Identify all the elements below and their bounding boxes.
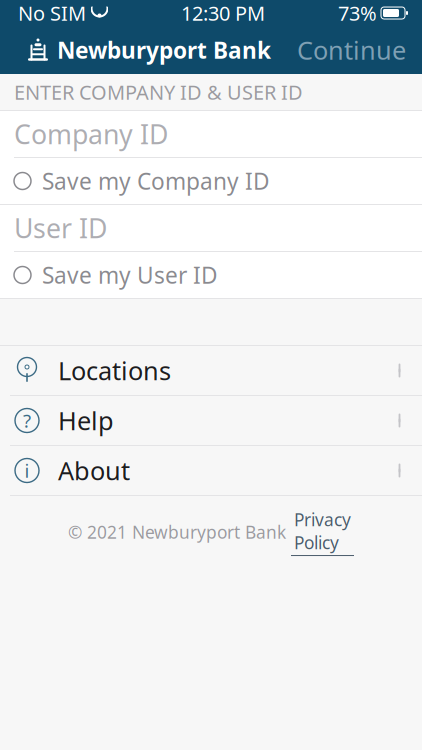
staticText: i: [24, 458, 29, 483]
staticText: About: [58, 454, 130, 487]
button[interactable]: Save my User ID: [0, 252, 422, 299]
staticText: Privacy Policy: [294, 508, 351, 554]
staticText: User ID: [14, 210, 107, 246]
staticText: No SIM: [18, 0, 86, 26]
staticText: 73%: [338, 0, 377, 26]
staticText: Newburyport Bank: [57, 35, 271, 65]
button[interactable]: Locations: [0, 346, 422, 396]
staticText: Save my Company ID: [42, 166, 270, 196]
button[interactable]: Save my Company ID: [0, 158, 422, 205]
staticText: Company ID: [14, 116, 168, 152]
staticText: Continue: [297, 33, 406, 67]
staticText: Help: [58, 404, 114, 437]
staticText: 12:30 PM: [181, 0, 265, 26]
staticText: ?: [23, 408, 31, 433]
staticText: Locations: [58, 354, 171, 387]
staticText: Save my User ID: [42, 260, 218, 290]
staticText: ENTER COMPANY ID & USER ID: [14, 79, 303, 105]
button[interactable]: i: [0, 446, 422, 496]
button[interactable]: Privacy Policy: [286, 508, 354, 556]
button[interactable]: Continue: [297, 33, 422, 67]
button[interactable]: ?: [0, 396, 422, 446]
staticText: © 2021 Newburyport Bank: [68, 520, 286, 543]
